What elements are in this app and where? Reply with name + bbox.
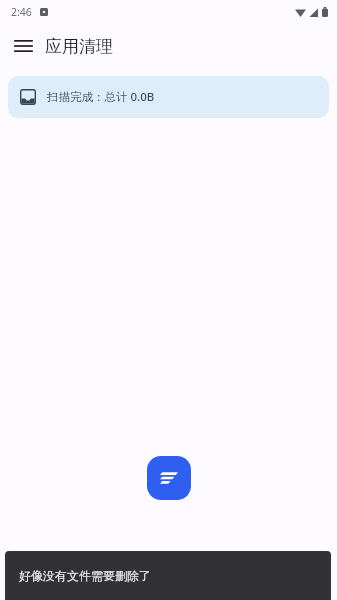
staticText: 2:46 xyxy=(11,5,32,19)
button[interactable]: Menu xyxy=(8,31,38,61)
staticText: 好像没有文件需要删除了 xyxy=(19,568,151,583)
staticText: 扫描完成：总计 0.0B xyxy=(47,89,155,105)
staticText: 应用清理 xyxy=(45,36,113,57)
button[interactable]: Clean files xyxy=(147,456,191,500)
button[interactable]: 扫描完成：总计 0.0B xyxy=(8,76,329,118)
button[interactable]: 好像没有文件需要删除了 xyxy=(5,551,331,600)
